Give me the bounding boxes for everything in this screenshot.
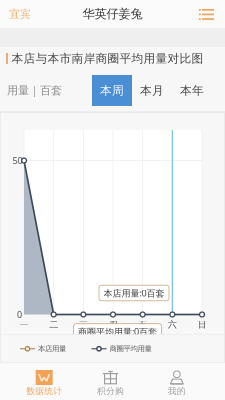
staticText: 二 (49, 319, 58, 330)
staticText: 本店用量 (38, 344, 66, 353)
staticText: 50 (12, 154, 22, 167)
staticText: 四 (108, 319, 117, 330)
button[interactable]: 菜单 (192, 0, 225, 28)
staticText: 三 (79, 319, 88, 330)
button[interactable]: 数据统计 (11, 363, 77, 400)
staticText: 本店用量:0百套 (103, 287, 164, 299)
staticText: 数据统计 (26, 385, 62, 397)
button[interactable]: 本周 (92, 75, 132, 106)
button[interactable]: 积分购 (77, 363, 144, 400)
button[interactable]: 本月 (132, 75, 172, 106)
staticText: 用量｜百套 (7, 83, 62, 97)
button[interactable]: 宜宾 (0, 0, 49, 28)
staticText: 六 (168, 319, 177, 330)
button[interactable]: 本年 (172, 75, 212, 106)
staticText: 我的 (168, 385, 186, 397)
staticText: 本年 (180, 83, 204, 98)
staticText: 宜宾 (9, 7, 31, 21)
staticText: 商圈平均用量 (109, 344, 151, 353)
staticText: 本店与本市南岸商圈平均用量对比图 (11, 51, 203, 66)
staticText: 五 (138, 319, 147, 330)
staticText: 本周 (100, 83, 124, 98)
staticText: 本月 (140, 83, 164, 98)
staticText: 华英仔姜兔 (82, 6, 142, 22)
staticText: 积分购 (97, 385, 124, 397)
button[interactable]: 我的 (144, 363, 210, 400)
staticText: 一 (19, 319, 28, 330)
staticText: 日 (197, 319, 206, 330)
staticText: 0 (17, 308, 22, 321)
staticText: 商圈平均用量:0百套 (78, 325, 157, 338)
